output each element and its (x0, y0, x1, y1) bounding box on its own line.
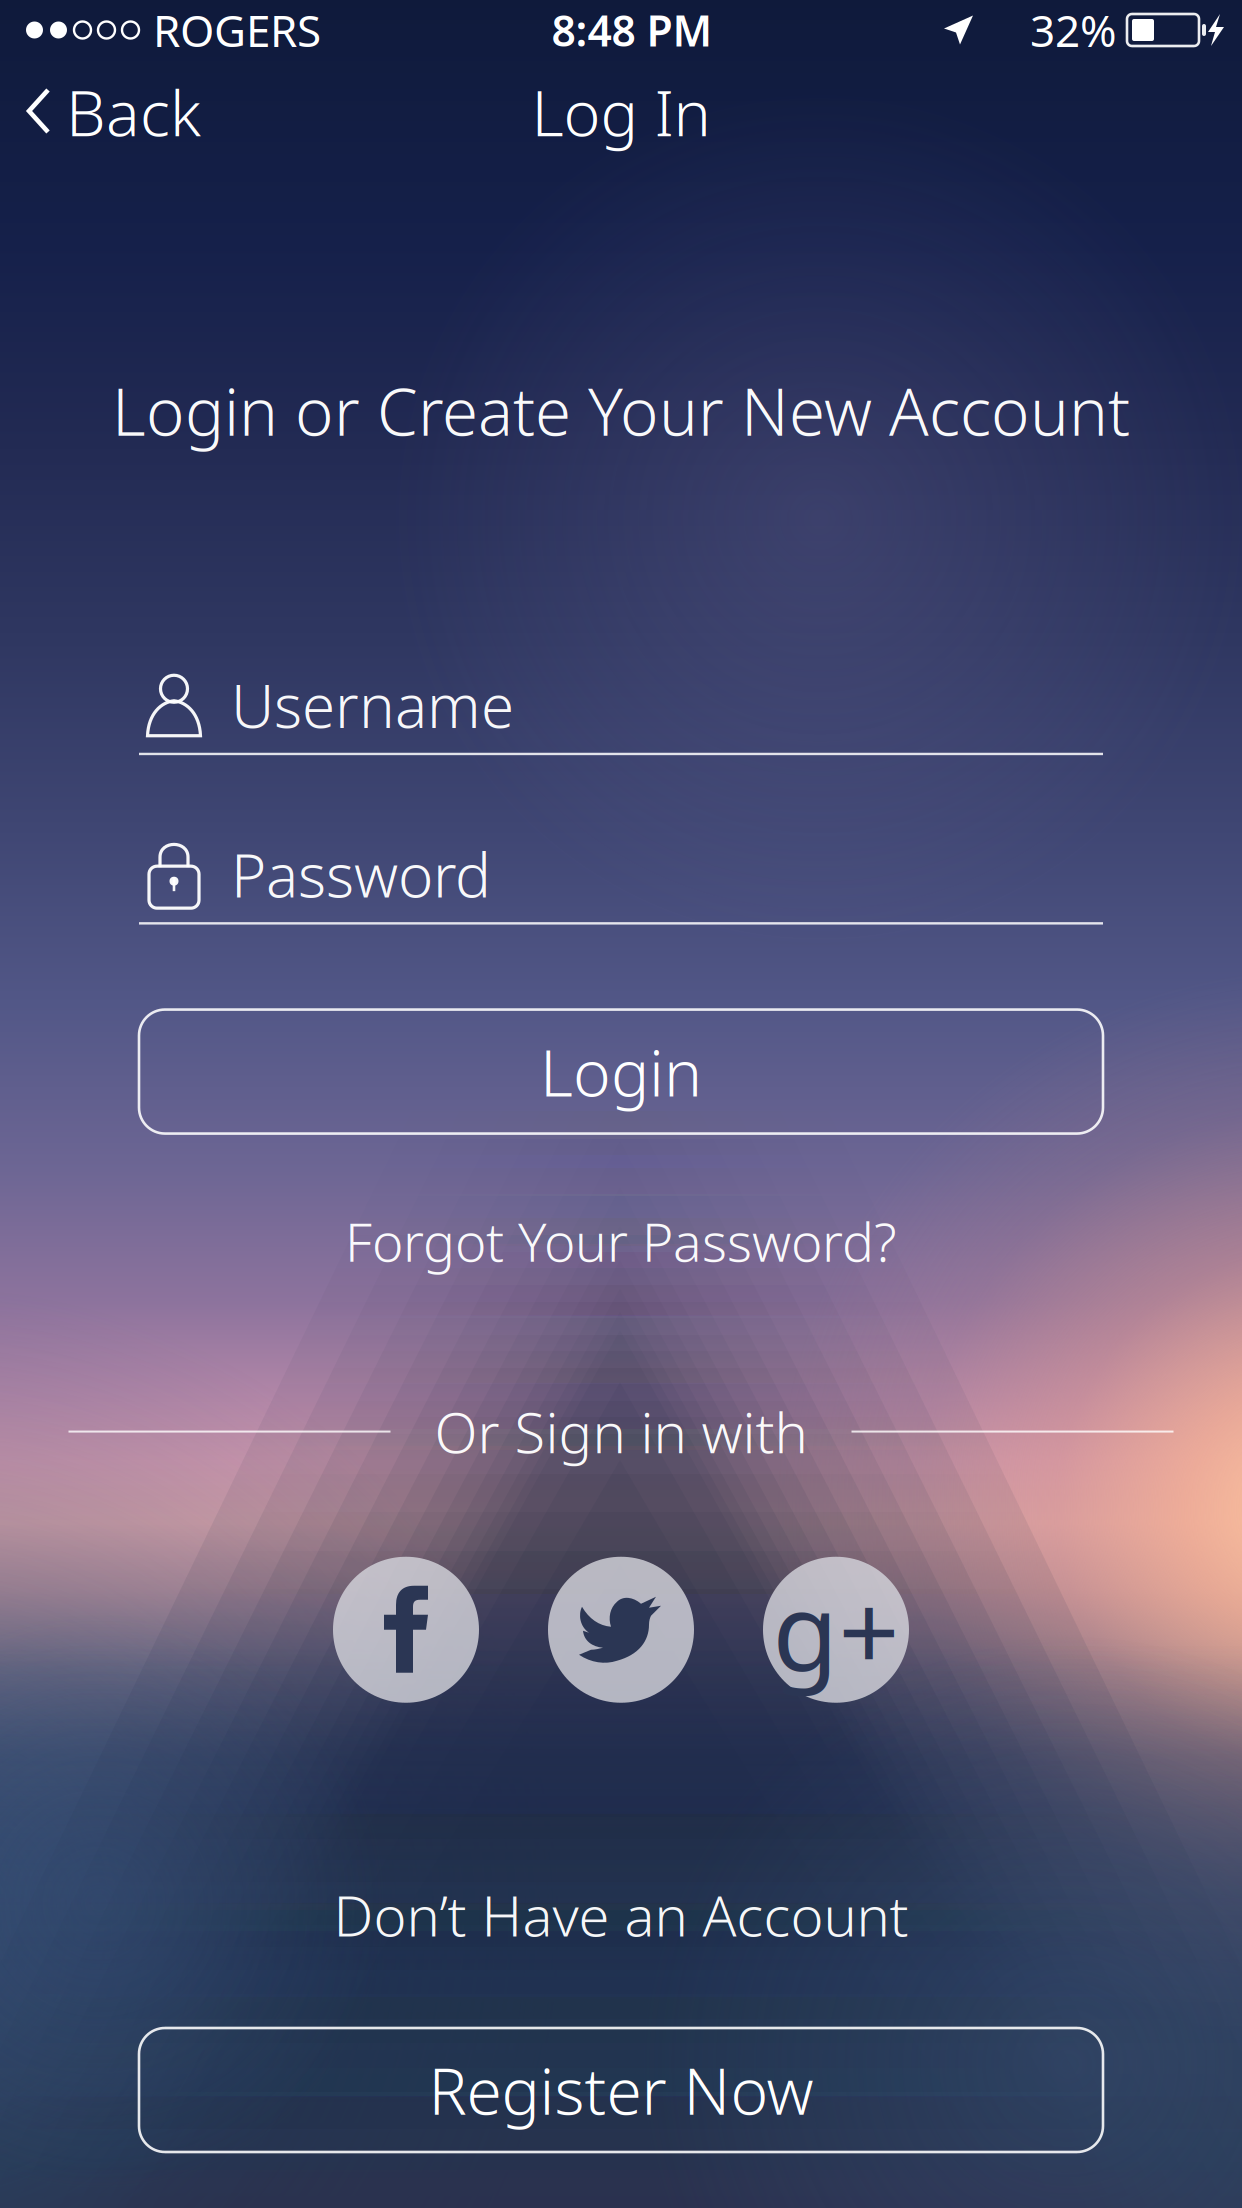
button[interactable]: Sign in with Twitter (548, 1557, 694, 1703)
staticText: Username (231, 665, 514, 745)
button[interactable]: Back (0, 58, 227, 166)
button[interactable]: Sign in with Facebook (333, 1557, 479, 1703)
staticText: ROGERS (153, 1, 321, 59)
staticText: Log In (531, 70, 710, 154)
staticText: Or Sign in with (434, 1394, 807, 1469)
staticText: Login or Create Your New Account (112, 367, 1130, 454)
staticText: 32% (1030, 1, 1117, 59)
staticText: Register Now (428, 2047, 813, 2132)
staticText: Password (231, 834, 491, 914)
staticText: Login (540, 1029, 702, 1114)
staticText: Back (66, 70, 201, 154)
staticText: Forgot Your Password? (345, 1206, 897, 1276)
staticText: Don’t Have an Account (333, 1878, 908, 1952)
staticText: g+ (772, 1559, 899, 1700)
staticText: 8:48 PM (551, 2, 712, 58)
button[interactable]: Sign in with Google Plus (763, 1557, 909, 1703)
button[interactable]: Register Now (139, 2028, 1103, 2152)
button[interactable]: Forgot Your Password? (319, 1192, 923, 1290)
button[interactable]: Login (139, 1010, 1103, 1134)
